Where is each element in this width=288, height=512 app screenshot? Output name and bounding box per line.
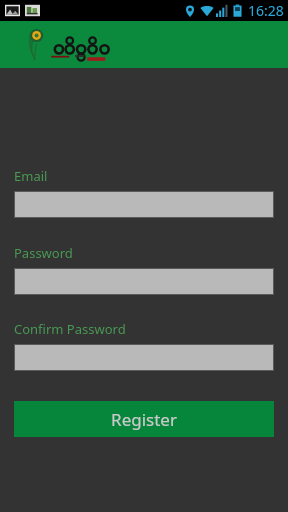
button[interactable]: Register — [14, 401, 274, 437]
staticText: Confirm Password — [14, 320, 126, 338]
button[interactable]: Confirm Password — [14, 344, 274, 371]
button[interactable]: Email — [14, 191, 274, 218]
staticText: Email — [14, 167, 48, 185]
staticText: 16:28 — [248, 1, 284, 20]
staticText: Register — [111, 408, 177, 431]
button[interactable]: Password — [14, 268, 274, 295]
staticText: Password — [14, 244, 73, 262]
